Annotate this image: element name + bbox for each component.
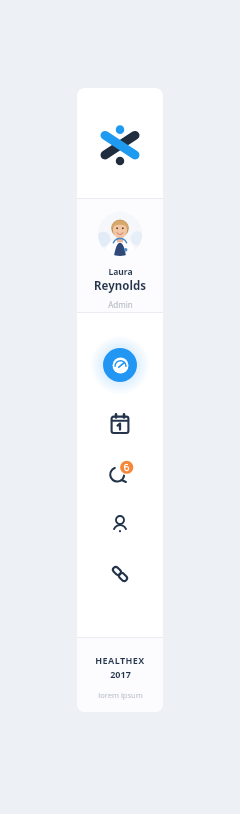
staticText: Admin — [108, 299, 133, 310]
staticText: Reynolds — [94, 278, 146, 294]
button[interactable]: Calendar — [103, 407, 137, 441]
button[interactable]: Dashboard — [90, 335, 150, 395]
button[interactable]: Links — [103, 557, 137, 591]
staticText: Laura — [108, 266, 133, 278]
button[interactable]: HEALTHEX — [77, 638, 163, 712]
staticText: 2017 — [110, 668, 131, 680]
staticText: lorem ipsum — [98, 690, 143, 700]
button[interactable]: Messages, 6 unread — [103, 457, 137, 491]
staticText: HEALTHEX — [95, 654, 145, 666]
button[interactable]: Profile — [103, 507, 137, 541]
button[interactable]: Laura — [77, 199, 163, 312]
button[interactable]: HealthEx logo — [77, 88, 163, 198]
